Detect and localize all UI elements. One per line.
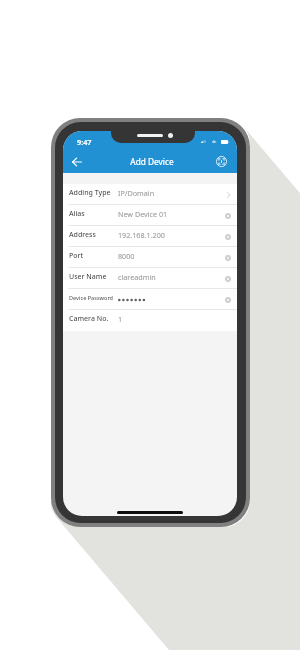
staticText: IP/Domain xyxy=(118,188,155,198)
staticText: Address xyxy=(69,230,96,240)
staticText: Camera No. xyxy=(69,314,109,324)
staticText: Add Device xyxy=(130,156,174,167)
button[interactable]: Alias xyxy=(63,205,237,226)
staticText: 1 xyxy=(118,314,123,324)
button[interactable]: User Name xyxy=(63,268,237,289)
staticText: Alias xyxy=(69,209,85,219)
staticText: 8000 xyxy=(118,251,135,261)
staticText: clareadmin xyxy=(118,272,156,282)
staticText: 192.168.1.200 xyxy=(118,230,165,240)
staticText: User Name xyxy=(69,272,107,282)
staticText: Adding Type xyxy=(69,188,111,198)
staticText: 9:47 xyxy=(77,137,92,147)
staticText: New Device 01 xyxy=(118,209,168,219)
button[interactable]: Scan QR code xyxy=(211,151,231,171)
button[interactable]: Address xyxy=(63,226,237,247)
button[interactable]: Camera No. xyxy=(63,310,237,331)
button[interactable]: Back xyxy=(66,151,88,173)
button[interactable]: Device Password xyxy=(63,289,237,310)
staticText: Port xyxy=(69,251,84,261)
button[interactable]: Adding Type xyxy=(63,184,237,205)
button[interactable]: Port xyxy=(63,247,237,268)
staticText: Device Password xyxy=(69,294,114,301)
